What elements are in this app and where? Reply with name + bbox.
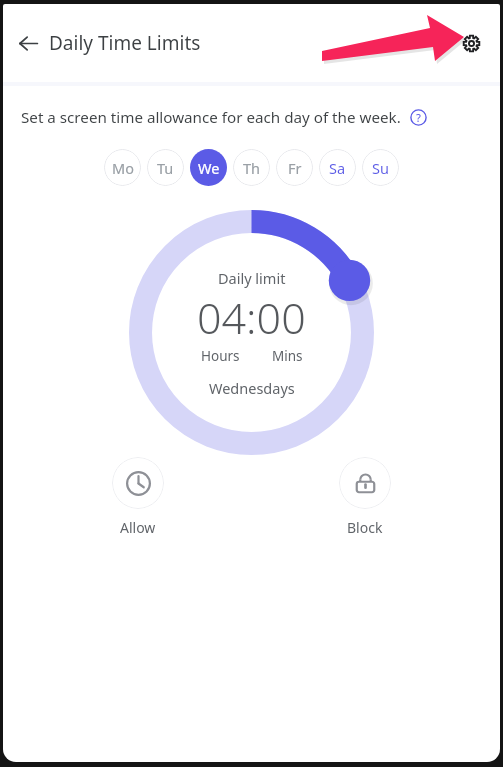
button[interactable]: Block (339, 457, 391, 537)
staticText: Tu (157, 158, 174, 178)
staticText: 04:00 (197, 288, 306, 347)
staticText: Daily limit (218, 268, 286, 288)
button[interactable]: Mo (104, 149, 141, 186)
button[interactable]: Su (362, 149, 399, 186)
button[interactable]: We (190, 149, 227, 186)
staticText: Sa (329, 158, 346, 178)
staticText: Hours (201, 347, 240, 365)
staticText: Daily Time Limits (49, 30, 201, 56)
button[interactable]: Th (233, 149, 270, 186)
button[interactable]: Allow (112, 457, 164, 537)
button[interactable]: Help (407, 106, 429, 128)
staticText: Block (347, 518, 383, 537)
staticText: Set a screen time allowance for each day… (21, 107, 401, 128)
staticText: Mins (272, 347, 303, 365)
staticText: We (198, 158, 220, 178)
button[interactable]: Fr (276, 149, 313, 186)
staticText: Wednesdays (209, 378, 295, 398)
button[interactable]: Tu (147, 149, 184, 186)
staticText: Th (243, 158, 261, 178)
button[interactable]: Settings (453, 25, 489, 61)
button[interactable]: Sa (319, 149, 356, 186)
staticText: Allow (120, 518, 156, 537)
staticText: ? (416, 110, 421, 125)
staticText: Su (372, 158, 389, 178)
staticText: Mo (112, 158, 134, 178)
staticText: Fr (288, 158, 302, 178)
button[interactable]: Back (10, 25, 46, 61)
